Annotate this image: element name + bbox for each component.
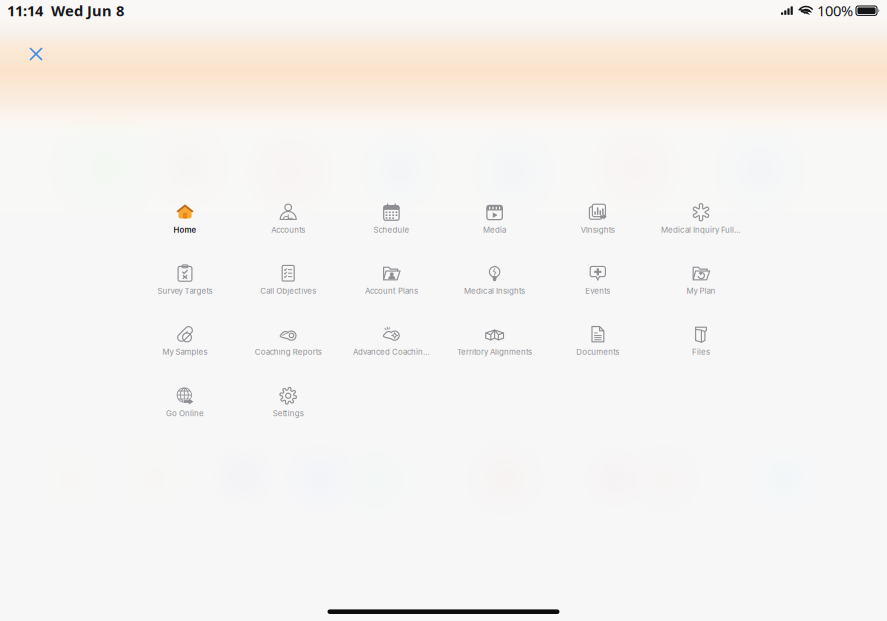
staticText: Medical Inquiry Full…	[661, 225, 741, 235]
staticText: My Plan	[686, 286, 715, 296]
button[interactable]: Documents	[548, 319, 648, 361]
staticText: Settings	[273, 409, 304, 418]
staticText: 100%	[817, 1, 853, 20]
button[interactable]: Accounts	[238, 197, 338, 239]
staticText: Medical Insights	[464, 286, 525, 296]
button[interactable]: Files	[651, 319, 751, 361]
button[interactable]: Account Plans	[341, 258, 441, 300]
button[interactable]: Survey Targets	[135, 258, 235, 300]
staticText: Files	[692, 347, 710, 357]
staticText: Documents	[576, 347, 619, 357]
button[interactable]: Media	[445, 197, 545, 239]
staticText: VInsights	[581, 225, 615, 235]
staticText: Media	[483, 225, 506, 235]
button[interactable]: My Plan	[651, 258, 751, 300]
button[interactable]: Territory Alignments	[445, 319, 545, 361]
button[interactable]: Coaching Reports	[238, 319, 338, 361]
staticText: Home	[173, 225, 196, 235]
staticText: Survey Targets	[157, 286, 212, 296]
button[interactable]: Medical Insights	[445, 258, 545, 300]
staticText: Call Objectives	[260, 286, 316, 296]
staticText: Territory Alignments	[457, 347, 532, 357]
button[interactable]: Home	[135, 197, 235, 239]
button[interactable]: Advanced Coachin…	[341, 319, 441, 361]
button[interactable]: Medical Inquiry Full…	[651, 197, 751, 239]
button[interactable]: My Samples	[135, 319, 235, 361]
button[interactable]: Close	[19, 37, 53, 71]
button[interactable]: Settings	[238, 381, 338, 423]
button[interactable]: VInsights	[548, 197, 648, 239]
staticText: Wed Jun 8	[43, 1, 124, 20]
button[interactable]: Events	[548, 258, 648, 300]
staticText: Events	[585, 286, 610, 296]
staticText: 11:14	[7, 1, 43, 20]
staticText: Account Plans	[365, 286, 418, 296]
staticText: Go Online	[166, 409, 204, 418]
button[interactable]: Go Online	[135, 381, 235, 423]
staticText: Accounts	[271, 225, 305, 235]
staticText: My Samples	[162, 347, 207, 357]
button[interactable]: Schedule	[341, 197, 441, 239]
staticText: Advanced Coachin…	[353, 347, 430, 357]
button[interactable]: Call Objectives	[238, 258, 338, 300]
staticText: Coaching Reports	[255, 347, 322, 357]
staticText: Schedule	[373, 225, 409, 235]
